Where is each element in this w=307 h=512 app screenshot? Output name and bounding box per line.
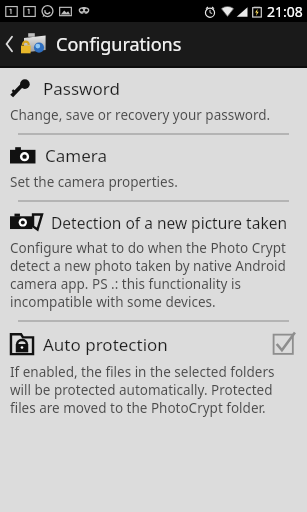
button[interactable]: Up, Configurations <box>0 22 307 66</box>
button[interactable]: Auto protection <box>0 322 307 426</box>
staticText: Detection of a new picture taken <box>51 212 297 233</box>
button[interactable]: Auto protection checkbox <box>271 331 297 357</box>
staticText: 21:08 <box>267 2 303 21</box>
staticText: Change, save or recovery your password. <box>10 106 271 124</box>
staticText: If enabled, the files in the selected fo… <box>10 363 297 417</box>
staticText: Set the camera properties. <box>10 173 178 191</box>
staticText: Password <box>43 77 297 100</box>
button[interactable]: Password <box>0 68 307 133</box>
staticText: Configure what to do when the Photo Cryp… <box>10 239 297 311</box>
button[interactable]: Detection of a new picture taken <box>0 202 307 320</box>
staticText: Auto protection <box>43 333 265 356</box>
staticText: Camera <box>45 144 297 167</box>
button[interactable]: Camera <box>0 135 307 200</box>
staticText: Configurations <box>56 32 182 57</box>
